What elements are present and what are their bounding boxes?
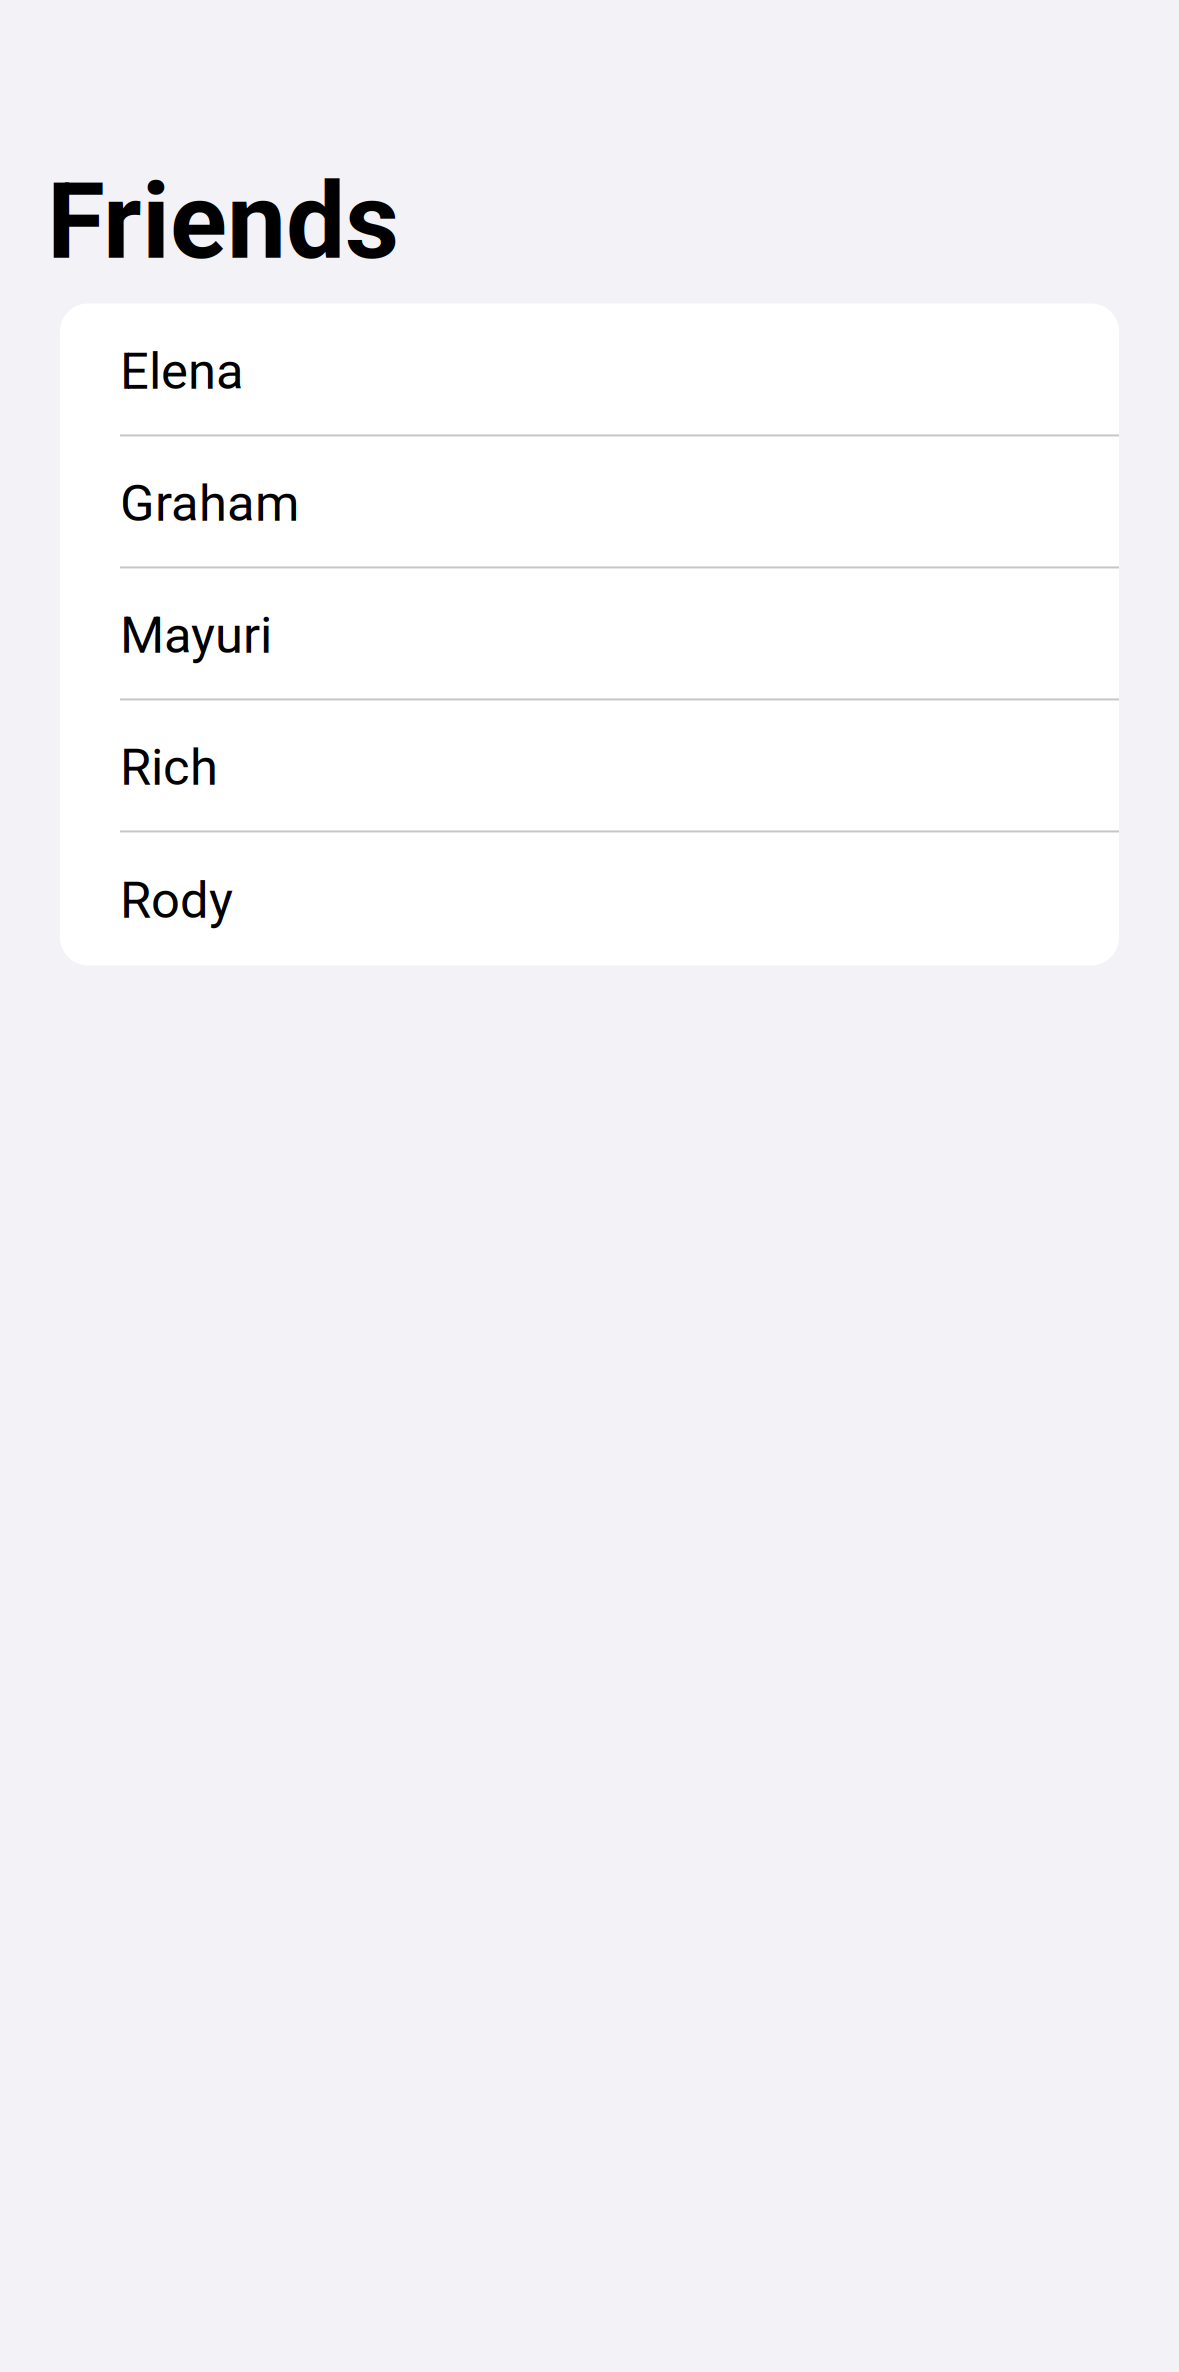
button[interactable]: Rich: [60, 699, 1119, 831]
staticText: Elena: [120, 342, 244, 401]
button[interactable]: Elena: [60, 303, 1119, 435]
staticText: Friends: [47, 160, 399, 283]
button[interactable]: Rody: [60, 831, 1119, 965]
staticText: Mayuri: [120, 606, 272, 665]
button[interactable]: Graham: [60, 435, 1119, 567]
staticText: Rody: [120, 871, 233, 930]
staticText: Rich: [120, 738, 218, 797]
staticText: Graham: [120, 474, 299, 533]
button[interactable]: Mayuri: [60, 567, 1119, 699]
